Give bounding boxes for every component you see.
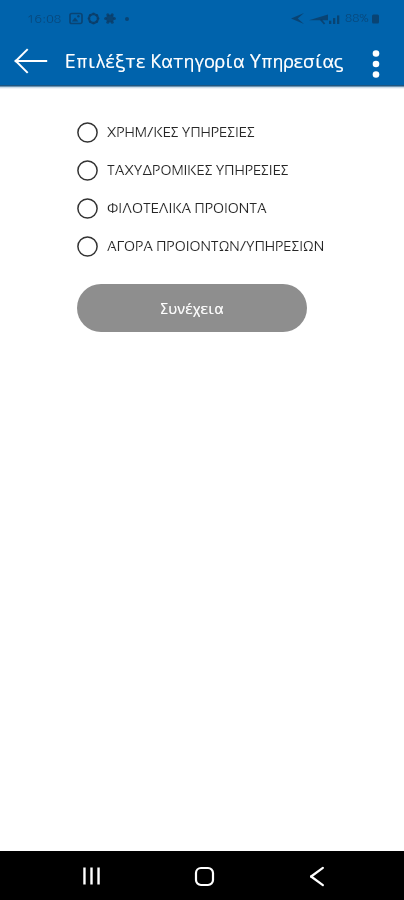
button[interactable]: Back <box>293 852 341 900</box>
button[interactable]: Back <box>9 37 53 85</box>
button[interactable]: ΧΡΗΜ/ΚΕΣ ΥΠΗΡΕΣΙΕΣ <box>0 113 404 151</box>
button[interactable]: ΦΙΛΟΤΕΛΙΚΑ ΠΡΟΙΟΝΤΑ <box>0 189 404 227</box>
button[interactable]: Συνέχεια <box>77 284 307 332</box>
staticText: 88% <box>345 10 369 26</box>
button[interactable]: Recent apps <box>67 852 115 900</box>
button[interactable]: Home <box>180 852 228 900</box>
staticText: 16:08 <box>27 10 62 27</box>
button[interactable]: ΤΑΧΥΔΡΟΜΙΚΕΣ ΥΠΗΡΕΣΙΕΣ <box>0 151 404 189</box>
staticText: ΑΓΟΡΑ ΠΡΟΙΟΝΤΩΝ/ΥΠΗΡΕΣΙΩΝ <box>107 239 325 254</box>
staticText: Επιλέξτε Κατηγορία Υπηρεσίας <box>65 48 344 74</box>
staticText: ΦΙΛΟΤΕΛΙΚΑ ΠΡΟΙΟΝΤΑ <box>107 201 267 216</box>
staticText: ΧΡΗΜ/ΚΕΣ ΥΠΗΡΕΣΙΕΣ <box>107 125 255 140</box>
staticText: Συνέχεια <box>160 298 224 319</box>
button[interactable]: ΑΓΟΡΑ ΠΡΟΙΟΝΤΩΝ/ΥΠΗΡΕΣΙΩΝ <box>0 227 404 265</box>
button[interactable]: More options <box>356 36 396 85</box>
staticText: ΤΑΧΥΔΡΟΜΙΚΕΣ ΥΠΗΡΕΣΙΕΣ <box>107 163 289 178</box>
